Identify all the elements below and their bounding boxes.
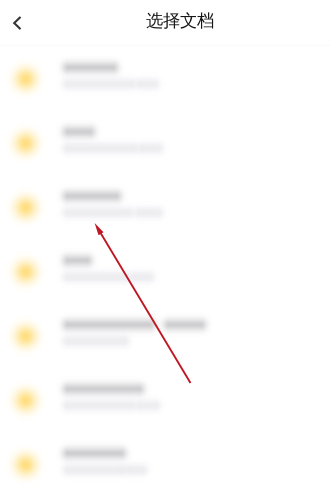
button[interactable] [0,175,330,240]
button[interactable] [0,47,330,111]
button[interactable] [0,240,330,304]
button[interactable]: Back [0,1,44,45]
button[interactable] [0,368,330,433]
button[interactable] [0,304,330,368]
staticText: 选择文档 [146,10,214,31]
button[interactable] [0,111,330,175]
button[interactable] [0,433,330,485]
